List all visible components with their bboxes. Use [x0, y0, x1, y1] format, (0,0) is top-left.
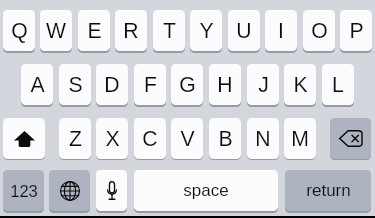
button[interactable]: X	[96, 118, 128, 159]
staticText: Z	[69, 127, 82, 151]
staticText: B	[218, 127, 233, 151]
staticText: E	[87, 19, 102, 43]
button[interactable]: P	[340, 10, 372, 51]
staticText: R	[123, 19, 139, 43]
button[interactable]: Y	[190, 10, 222, 51]
button[interactable]: L	[322, 64, 354, 105]
staticText: L	[332, 73, 344, 97]
button[interactable]: E	[78, 10, 110, 51]
button[interactable]: H	[209, 64, 241, 105]
staticText: A	[30, 73, 45, 97]
staticText: M	[291, 127, 309, 151]
staticText: 123	[10, 182, 38, 201]
staticText: H	[217, 73, 233, 97]
staticText: O	[311, 19, 328, 43]
button[interactable]: R	[115, 10, 147, 51]
staticText: Y	[199, 19, 214, 43]
button[interactable]: M	[284, 118, 316, 159]
staticText: return	[306, 181, 351, 200]
button[interactable]: B	[209, 118, 241, 159]
button[interactable]: K	[284, 64, 316, 105]
staticText: D	[104, 73, 120, 97]
button[interactable]: J	[247, 64, 279, 105]
button[interactable]: 123	[3, 170, 44, 211]
button[interactable]: I	[265, 10, 297, 51]
staticText: V	[180, 127, 195, 151]
button[interactable]: Dictate	[96, 170, 127, 211]
staticText: G	[179, 73, 196, 97]
button[interactable]: Backspace	[330, 118, 371, 159]
staticText: U	[236, 19, 252, 43]
button[interactable]: Shift	[3, 118, 45, 159]
button[interactable]: Z	[59, 118, 91, 159]
button[interactable]: return	[285, 170, 371, 211]
staticText: C	[142, 127, 158, 151]
staticText: I	[278, 19, 284, 43]
button[interactable]: C	[134, 118, 166, 159]
button[interactable]: G	[171, 64, 203, 105]
button[interactable]: T	[153, 10, 185, 51]
button[interactable]: V	[171, 118, 203, 159]
button[interactable]: Q	[3, 10, 35, 51]
staticText: X	[105, 127, 120, 151]
staticText: S	[68, 73, 83, 97]
staticText: W	[46, 19, 66, 43]
staticText: space	[183, 181, 229, 200]
staticText: J	[258, 73, 269, 97]
button[interactable]: A	[21, 64, 53, 105]
button[interactable]: Next keyboard	[49, 170, 90, 211]
button[interactable]: U	[228, 10, 260, 51]
staticText: N	[255, 127, 271, 151]
button[interactable]: W	[40, 10, 72, 51]
button[interactable]: N	[247, 118, 279, 159]
staticText: K	[293, 73, 308, 97]
button[interactable]: space	[134, 170, 278, 211]
staticText: T	[163, 19, 176, 43]
button[interactable]: D	[96, 64, 128, 105]
staticText: P	[349, 19, 364, 43]
staticText: Q	[11, 19, 28, 43]
button[interactable]: F	[134, 64, 166, 105]
button[interactable]: S	[59, 64, 91, 105]
button[interactable]: O	[303, 10, 335, 51]
staticText: F	[144, 73, 157, 97]
